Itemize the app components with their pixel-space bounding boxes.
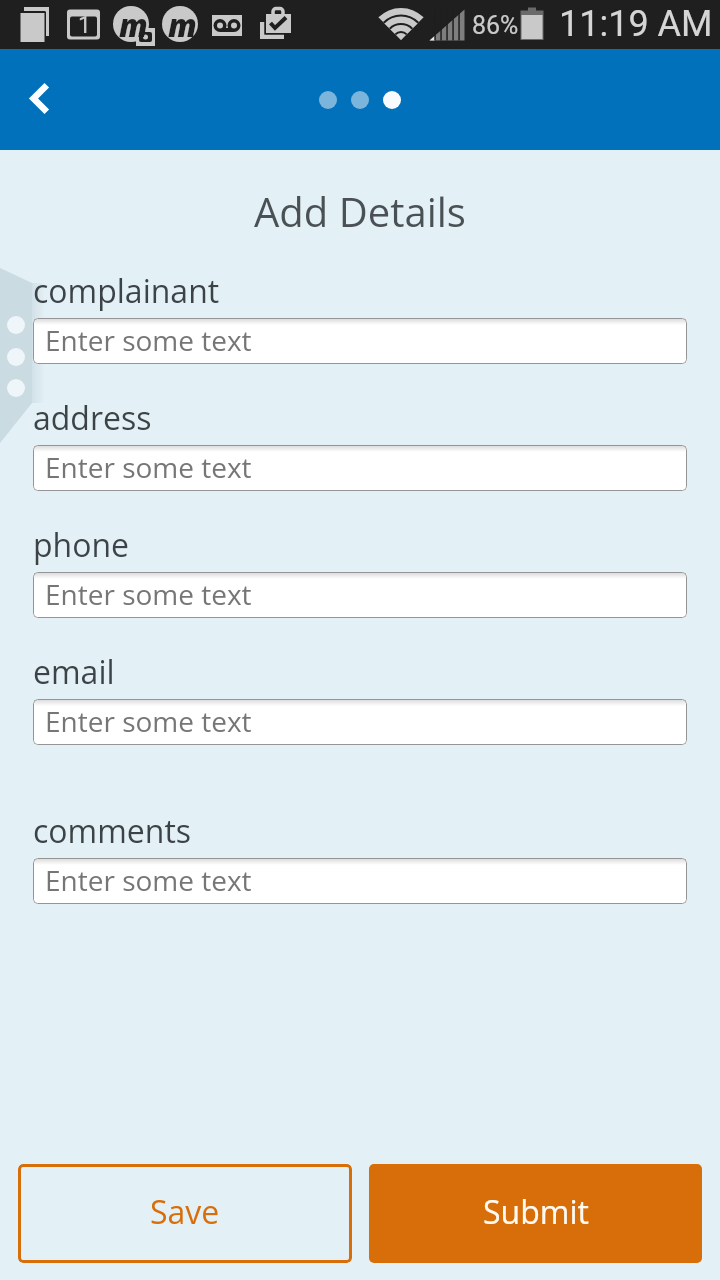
staticText: Add Details (0, 184, 720, 238)
button[interactable]: Enter some text (33, 699, 687, 745)
staticText: phone (33, 523, 130, 567)
button[interactable]: Submit (369, 1164, 702, 1263)
button[interactable]: Enter some text (33, 858, 687, 904)
staticText: m (119, 4, 148, 46)
staticText: address (33, 396, 152, 440)
button[interactable]: Enter some text (33, 572, 687, 618)
staticText: m (168, 4, 197, 46)
staticText: Enter some text (45, 861, 252, 899)
staticText: Enter some text (45, 448, 252, 486)
staticText: Enter some text (45, 321, 252, 359)
button[interactable]: Enter some text (33, 318, 687, 364)
button[interactable]: Open navigation menu (0, 262, 46, 452)
staticText: 86% (472, 11, 519, 40)
staticText: Enter some text (45, 702, 252, 740)
button[interactable]: Save (18, 1164, 352, 1263)
button[interactable]: Enter some text (33, 445, 687, 491)
staticText: 11:19 AM (559, 3, 713, 45)
staticText: email (33, 650, 115, 694)
staticText: 1 (78, 12, 91, 39)
staticText: Submit (483, 1190, 589, 1234)
button[interactable]: Back (8, 64, 72, 128)
staticText: comments (33, 809, 192, 853)
staticText: Enter some text (45, 575, 252, 613)
staticText: Save (150, 1190, 220, 1234)
staticText: complainant (33, 269, 220, 313)
